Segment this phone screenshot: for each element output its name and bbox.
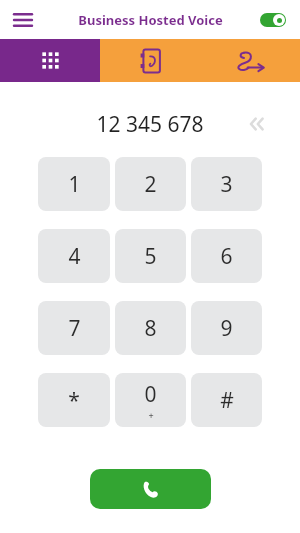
staticText: 1 [68, 170, 81, 199]
button[interactable]: 5 [115, 229, 186, 283]
staticText: # [220, 386, 234, 415]
button[interactable]: Call [90, 469, 211, 509]
button[interactable]: # [191, 373, 262, 427]
button[interactable]: 6 [191, 229, 262, 283]
staticText: * [68, 386, 80, 415]
button[interactable]: Backspace [244, 111, 270, 137]
staticText: 4 [68, 242, 81, 271]
staticText: 12 345 678 [96, 110, 204, 139]
button[interactable]: * [38, 373, 110, 427]
staticText: 5 [144, 242, 157, 271]
button[interactable]: Dialpad [0, 39, 100, 82]
button[interactable]: 2 [115, 157, 186, 211]
staticText: 9 [220, 314, 233, 343]
button[interactable]: Call forwarding [200, 39, 300, 82]
button[interactable]: 8 [115, 301, 186, 355]
button[interactable]: 3 [191, 157, 262, 211]
staticText: + [148, 409, 154, 421]
button[interactable]: 9 [191, 301, 262, 355]
staticText: 0 [144, 380, 157, 409]
button[interactable]: 0 [115, 373, 186, 427]
staticText: 2 [144, 170, 157, 199]
staticText: 3 [220, 170, 233, 199]
button[interactable]: Contacts [100, 39, 200, 82]
button[interactable]: 1 [38, 157, 110, 211]
button[interactable]: 7 [38, 301, 110, 355]
button[interactable]: 4 [38, 229, 110, 283]
button[interactable]: Toggle availability [256, 9, 290, 31]
staticText: 8 [144, 314, 157, 343]
staticText: 7 [68, 314, 81, 343]
staticText: Business Hosted Voice [78, 11, 223, 29]
button[interactable]: Menu [8, 5, 38, 35]
staticText: 6 [220, 242, 233, 271]
